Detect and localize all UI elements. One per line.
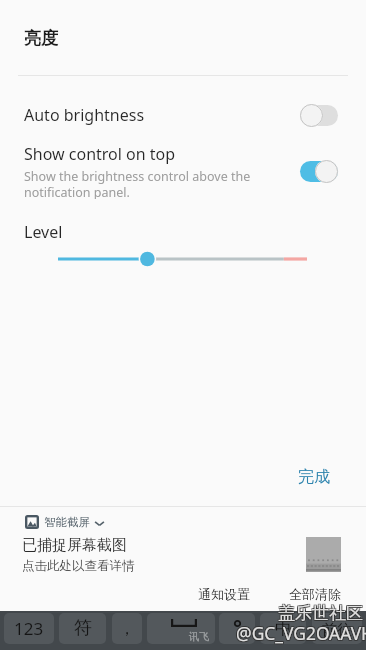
staticText: Level [24, 221, 63, 243]
staticText: 讯飞 [189, 630, 209, 643]
button[interactable]: ， [112, 613, 142, 644]
staticText: 123 [14, 617, 44, 640]
staticText: 盖乐世社区 [277, 604, 362, 625]
staticText: 完成 [298, 467, 330, 487]
button[interactable] [0, 507, 366, 581]
button[interactable]: Key [147, 613, 215, 644]
staticText: 符 [74, 617, 92, 640]
staticText: 亮度 [24, 28, 58, 49]
staticText: 盖乐世社区 [279, 604, 364, 625]
button[interactable]: Key [312, 613, 362, 644]
button[interactable]: Expand notification [94, 518, 105, 529]
staticText: @GC_VG2OAAVH [236, 622, 366, 646]
staticText: 全部清除 [289, 586, 341, 602]
button[interactable]: Brightness level [48, 246, 318, 272]
staticText: 中 [275, 618, 292, 639]
button[interactable]: Key [219, 613, 255, 644]
button[interactable]: 123 [4, 613, 54, 644]
staticText: 通知设置 [198, 586, 250, 602]
button[interactable]: 亮度 [0, 0, 366, 77]
staticText: 盖乐世社区 [278, 602, 363, 623]
staticText: @GC_VG2OAAVH [237, 620, 366, 644]
staticText: 盖乐世社区 [277, 603, 362, 624]
button[interactable]: 中 [260, 613, 306, 644]
button[interactable]: 全部清除 [281, 578, 349, 610]
button[interactable]: 完成 [288, 457, 340, 497]
staticText: @GC_VG2OAAVH [236, 621, 366, 645]
staticText: Show control on top [24, 143, 176, 165]
staticText: 盖乐世社区 [277, 602, 362, 623]
staticText: 盖乐世社区 [278, 604, 363, 625]
staticText: Auto brightness [24, 104, 300, 126]
staticText: 已捕捉屏幕截图 [22, 536, 127, 555]
staticText: @GC_VG2OAAVH [237, 621, 366, 645]
staticText: @GC_VG2OAAVH [235, 621, 366, 645]
staticText: 前往 [322, 621, 352, 640]
staticText: 盖乐世社区 [279, 603, 364, 624]
button[interactable]: Switch on [300, 160, 338, 183]
staticText: @GC_VG2OAAVH [235, 622, 366, 646]
staticText: @GC_VG2OAAVH [237, 622, 366, 646]
staticText: 智能截屏 [44, 515, 90, 529]
staticText: Show the brightness control above the no… [24, 168, 251, 199]
staticText: @GC_VG2OAAVH [236, 620, 366, 644]
staticText: 盖乐世社区 [279, 602, 364, 623]
button[interactable]: 通知设置 [190, 578, 258, 610]
button[interactable]: 符 [59, 613, 106, 644]
staticText: 点击此处以查看详情 [22, 558, 135, 574]
staticText: @GC_VG2OAAVH [235, 620, 366, 644]
button[interactable]: Auto brightness [0, 93, 366, 137]
button[interactable]: Show control on top [0, 143, 366, 199]
staticText: ， [119, 619, 135, 639]
staticText: 盖乐世社区 [278, 603, 363, 624]
button[interactable]: Switch off [300, 104, 338, 127]
